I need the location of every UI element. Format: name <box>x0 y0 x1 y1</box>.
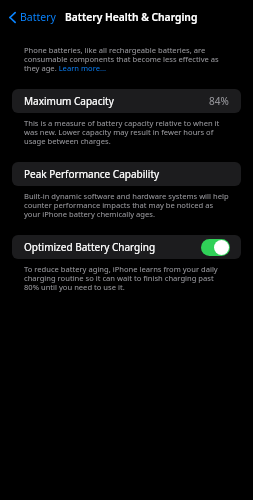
staticText: To reduce battery aging, iPhone learns f… <box>24 264 230 293</box>
staticText: Battery Health & Charging <box>65 10 198 24</box>
staticText: Battery <box>20 10 56 24</box>
staticText: This is a measure of battery capacity re… <box>24 118 230 147</box>
button[interactable]: Optimized Battery Charging, on <box>201 239 230 256</box>
staticText: Built-in dynamic software and hardware s… <box>24 191 230 220</box>
staticText: Maximum Capacity <box>24 94 114 108</box>
staticText: Phone batteries, like all rechargeable b… <box>24 45 230 74</box>
staticText: Optimized Battery Charging <box>24 240 156 254</box>
button[interactable]: Peak Performance Capability <box>12 162 241 186</box>
staticText: 84% <box>209 94 229 108</box>
staticText: Peak Performance Capability <box>24 167 160 181</box>
button[interactable]: Back to Battery <box>5 5 60 29</box>
button[interactable]: Maximum Capacity <box>12 89 241 113</box>
button[interactable]: Optimized Battery Charging <box>12 235 241 259</box>
